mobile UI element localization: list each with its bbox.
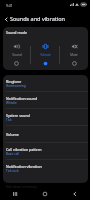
button[interactable]: System sound [3, 109, 88, 126]
staticText: Sound [12, 53, 22, 57]
staticText: 9:41 [6, 3, 13, 8]
staticText: Mute [70, 53, 78, 57]
button[interactable]: Volume [3, 126, 88, 143]
staticText: Sound mode [6, 30, 27, 35]
staticText: Notification sound [6, 96, 38, 101]
staticText: Whistle [6, 101, 17, 105]
button[interactable]: Recent apps [0, 188, 30, 200]
button[interactable]: Ringtone [3, 75, 88, 92]
button[interactable]: Call vibration pattern [3, 143, 88, 160]
staticText: Tick [6, 118, 12, 122]
button[interactable]: Back [60, 188, 90, 200]
staticText: System sound [6, 113, 30, 118]
staticText: Homecoming [6, 84, 26, 88]
staticText: Call vibration pattern [6, 147, 42, 152]
button[interactable]: Sound [3, 40, 30, 70]
staticText: Volume [6, 132, 19, 137]
staticText: Vibration intensity [6, 184, 37, 189]
staticText: Ringtone [6, 79, 22, 84]
staticText: Tick tock [6, 169, 19, 173]
button[interactable]: Vibrate [31, 40, 59, 70]
button[interactable]: Notification sound [3, 92, 88, 109]
button[interactable]: Mute [60, 40, 88, 70]
button[interactable]: Home [30, 188, 60, 200]
staticText: Vibrate [40, 53, 51, 57]
button[interactable]: Notification vibration [3, 160, 88, 177]
staticText: Basic call [6, 152, 20, 156]
staticText: Notification vibration [6, 164, 42, 169]
staticText: Sounds and vibration [10, 15, 65, 22]
button[interactable]: Navigate up [1, 14, 12, 25]
